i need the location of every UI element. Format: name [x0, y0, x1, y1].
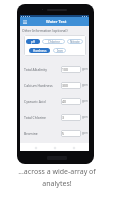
staticText: 100: [62, 67, 68, 72]
staticText: Cyanuric Acid: [24, 99, 46, 104]
staticText: Water Test: [46, 19, 67, 24]
button[interactable]: Iron: [53, 48, 66, 53]
staticText: ppm: [82, 83, 88, 87]
staticText: Total Chlorine: [24, 115, 47, 120]
staticText: Hardness: [33, 49, 47, 53]
staticText: Iron: [57, 49, 63, 53]
staticText: Other Information (optional): [22, 28, 68, 33]
staticText: ...across a wide-array of: [18, 167, 96, 177]
staticText: 3: [62, 115, 64, 120]
staticText: ppm: [82, 67, 88, 71]
button[interactable]: Chlorine: [42, 39, 65, 44]
staticText: Chlorine: [48, 40, 60, 44]
button[interactable]: Cyanuric Acid: [20, 93, 89, 109]
staticText: ppm: [82, 99, 88, 103]
button[interactable]: Home: [51, 144, 58, 151]
staticText: pH: [31, 40, 36, 44]
button[interactable]: pH: [26, 39, 40, 44]
staticText: ppm: [82, 115, 88, 119]
button[interactable]: Bromine: [20, 125, 89, 141]
staticText: 40: [62, 99, 66, 104]
button[interactable]: Hardness: [29, 48, 50, 53]
staticText: Nitrate: [70, 40, 80, 44]
staticText: Bromine: [24, 131, 38, 136]
staticText: ppm: [82, 131, 88, 135]
staticText: Total Alkalinity: [24, 67, 48, 72]
button[interactable]: Recents: [70, 144, 77, 151]
button[interactable]: Navigate up: [21, 18, 28, 25]
button[interactable]: Calcium Hardness: [20, 77, 89, 93]
button[interactable]: Back: [32, 144, 39, 151]
staticText: analytes!: [42, 179, 72, 189]
staticText: 300: [62, 83, 68, 88]
staticText: 5: [62, 131, 64, 136]
staticText: Calcium Hardness: [24, 83, 53, 88]
button[interactable]: Total Chlorine: [20, 109, 89, 125]
button[interactable]: Total Alkalinity: [20, 61, 89, 77]
button[interactable]: Nitrate: [67, 39, 83, 44]
